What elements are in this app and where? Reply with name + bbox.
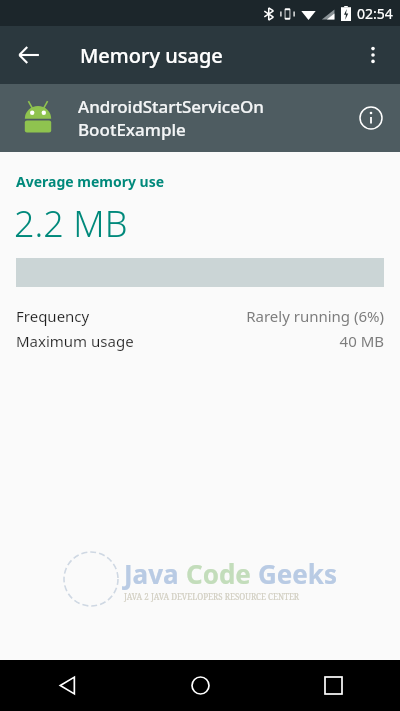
button[interactable]: App info: [348, 95, 394, 141]
staticText: Maximum usage: [16, 331, 134, 351]
staticText: AndroidStartServiceOn BootExample: [78, 95, 348, 141]
staticText: Geeks: [258, 556, 338, 591]
button[interactable]: Home: [134, 660, 267, 711]
staticText: Frequency: [16, 306, 90, 326]
button[interactable]: Maximum usage: [0, 331, 400, 351]
button[interactable]: Recent apps: [267, 660, 400, 711]
button[interactable]: Frequency: [0, 306, 400, 326]
button[interactable]: AndroidStartServiceOn BootExample: [0, 84, 400, 152]
staticText: Memory usage: [80, 42, 223, 69]
staticText: Code: [186, 556, 258, 591]
staticText: 2.2 MB: [14, 199, 128, 248]
staticText: Average memory use: [16, 172, 165, 191]
staticText: Java: [124, 556, 186, 591]
button[interactable]: Back: [0, 660, 134, 711]
staticText: 40 MB: [339, 331, 384, 351]
button[interactable]: Back: [6, 32, 52, 78]
staticText: 02:54: [357, 4, 393, 23]
button[interactable]: More options: [350, 32, 396, 78]
staticText: JAVA 2 JAVA DEVELOPERS RESOURCE CENTER: [124, 591, 300, 602]
staticText: Rarely running (6%): [246, 306, 384, 326]
